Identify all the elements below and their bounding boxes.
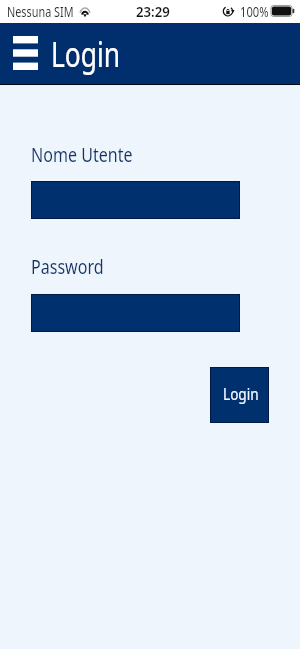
button[interactable]: Login xyxy=(210,367,269,423)
staticText: Password xyxy=(31,254,104,280)
staticText: 100% xyxy=(240,2,269,21)
button[interactable]: Nome Utente field xyxy=(31,181,240,219)
button[interactable]: Menu xyxy=(13,36,38,70)
staticText: Nessuna SIM xyxy=(7,2,74,21)
staticText: 23:29 xyxy=(136,2,170,21)
staticText: Login xyxy=(51,31,121,77)
button[interactable]: Password field xyxy=(31,294,240,332)
staticText: Login xyxy=(223,382,259,405)
staticText: Nome Utente xyxy=(31,142,133,168)
